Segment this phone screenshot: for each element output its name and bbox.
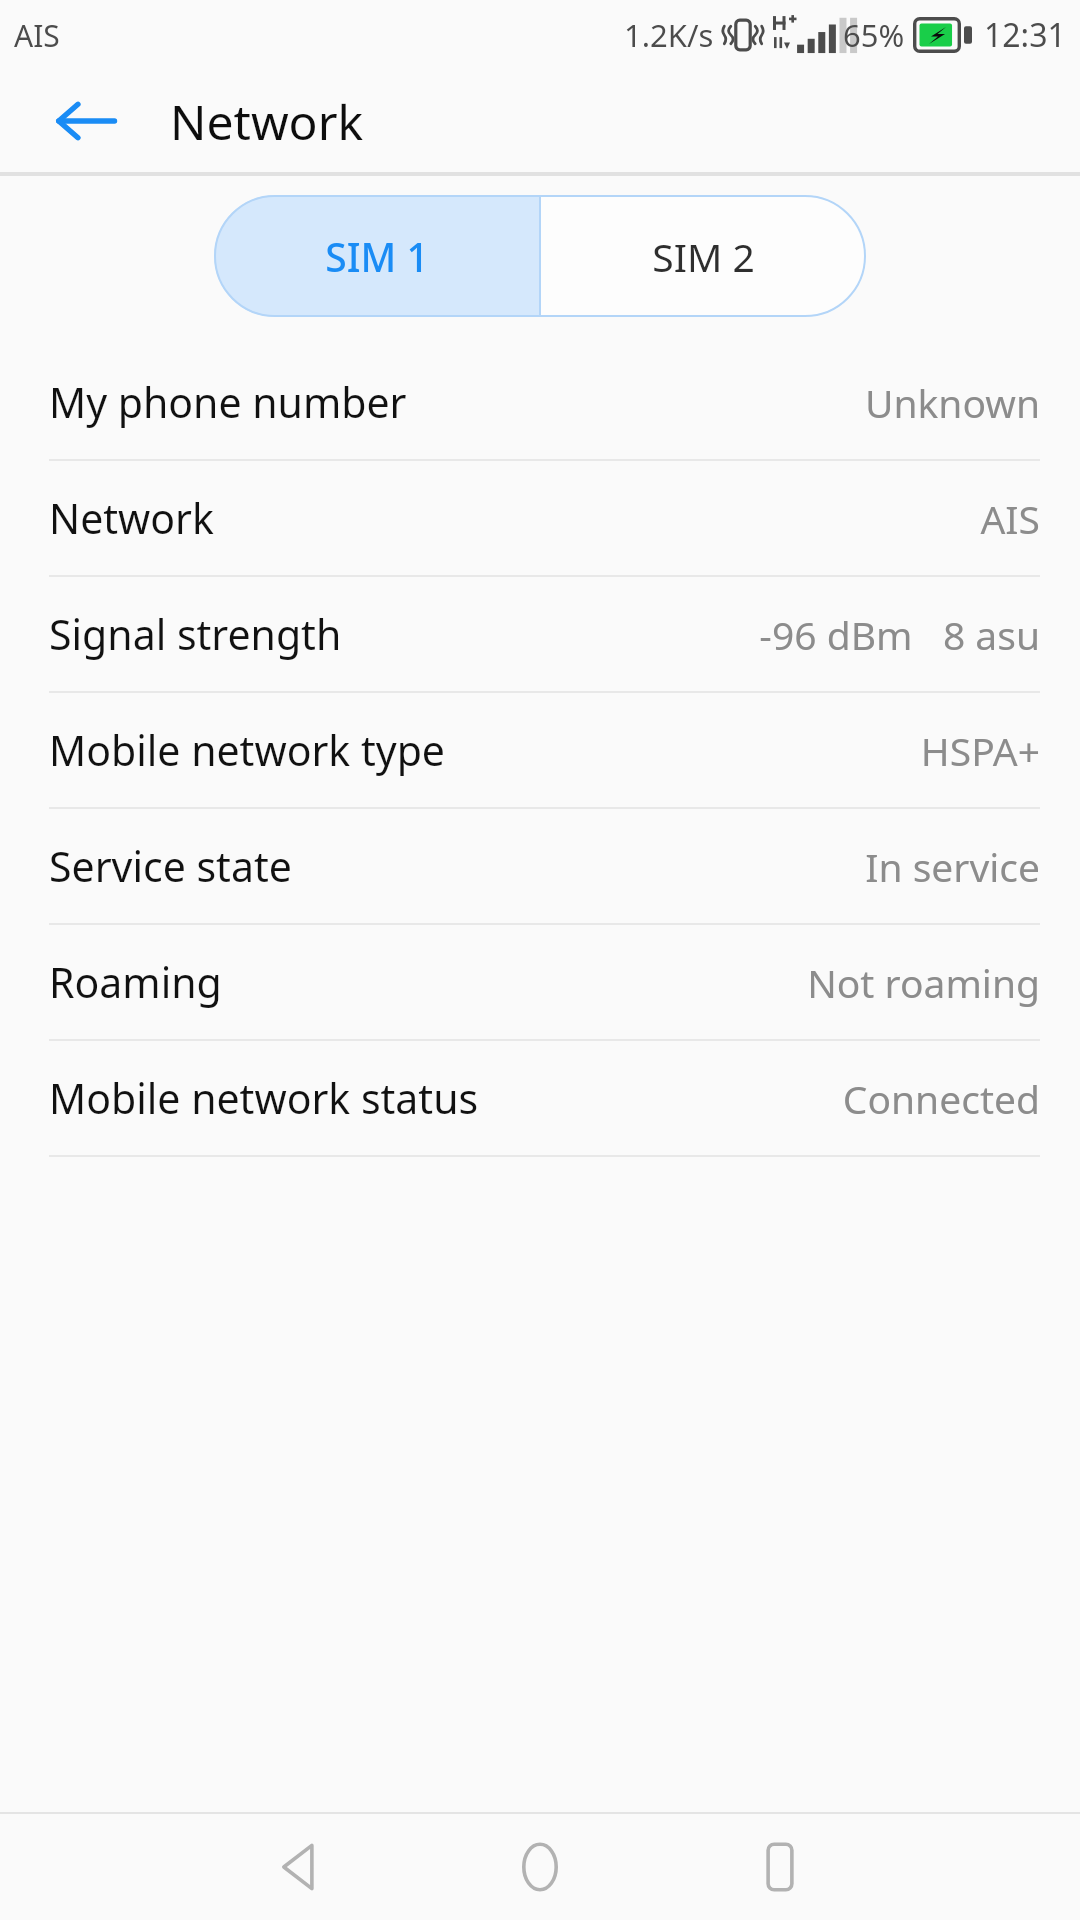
staticText: SIM 1 — [325, 230, 429, 283]
staticText: Network — [49, 490, 214, 546]
button[interactable]: Home — [460, 1814, 620, 1920]
staticText: Not roaming — [807, 956, 1040, 1009]
button[interactable]: Mobile network status — [0, 1041, 1080, 1155]
button[interactable]: My phone number — [0, 345, 1080, 459]
staticText: Roaming — [49, 954, 222, 1010]
staticText: 12:31 — [984, 13, 1066, 57]
staticText: Mobile network status — [49, 1070, 479, 1126]
staticText: AIS — [980, 492, 1040, 545]
button[interactable]: SIM 1 — [214, 195, 540, 317]
button[interactable]: Back — [28, 70, 144, 172]
staticText: Service state — [49, 838, 292, 894]
staticText: Unknown — [864, 376, 1040, 429]
staticText: Connected — [842, 1072, 1040, 1125]
staticText: Network — [170, 89, 364, 154]
button[interactable]: Mobile network type — [0, 693, 1080, 807]
staticText: Signal strength — [49, 606, 342, 662]
staticText: HSPA+ — [920, 724, 1040, 777]
button[interactable]: Signal strength — [0, 577, 1080, 691]
staticText: SIM 2 — [652, 230, 755, 283]
button[interactable]: Roaming — [0, 925, 1080, 1039]
button[interactable]: Service state — [0, 809, 1080, 923]
staticText: In service — [865, 840, 1040, 893]
button[interactable]: SIM 2 — [540, 195, 866, 317]
staticText: -96 dBm 8 asu — [759, 608, 1040, 661]
staticText: AIS — [14, 15, 60, 56]
button[interactable]: Recents — [700, 1814, 860, 1920]
button[interactable]: Back — [220, 1814, 380, 1920]
staticText: 65% — [843, 14, 905, 56]
button[interactable]: Network — [0, 461, 1080, 575]
staticText: Mobile network type — [49, 722, 445, 778]
staticText: 1.2K/s — [624, 14, 714, 56]
staticText: My phone number — [49, 374, 407, 430]
